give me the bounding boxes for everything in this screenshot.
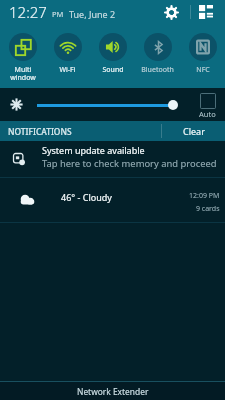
staticText: Tue, June 2 <box>69 8 116 20</box>
staticText: Bluetooth <box>141 65 174 75</box>
staticText: PM <box>52 9 64 19</box>
button[interactable]: Auto brightness <box>200 93 216 109</box>
staticText: 12:27 <box>9 2 47 22</box>
staticText: Sound <box>102 65 124 75</box>
staticText: 9 cards <box>196 204 220 214</box>
staticText: System update available <box>42 144 145 156</box>
button[interactable]: System update available <box>0 141 225 177</box>
staticText: Auto <box>199 109 216 119</box>
button[interactable]: NFC <box>180 27 225 88</box>
button[interactable]: Wi-Fi <box>45 27 90 88</box>
button[interactable]: Settings <box>159 0 183 24</box>
button[interactable]: Quick settings <box>194 0 218 24</box>
staticText: Multi window <box>10 65 36 82</box>
button[interactable]: Sound <box>90 27 135 88</box>
staticText: Network Extender <box>77 386 149 397</box>
staticText: Wi-Fi <box>59 65 76 75</box>
button[interactable]: Clear <box>162 121 225 141</box>
button[interactable]: Bluetooth <box>135 27 180 88</box>
staticText: Tap here to check memory and proceed <box>42 157 217 170</box>
staticText: Clear <box>183 125 205 137</box>
staticText: 46° - Cloudy <box>61 191 112 203</box>
button[interactable]: Multi window <box>0 27 45 88</box>
staticText: NOTIFICATIONS <box>8 126 72 137</box>
staticText: 12:09 PM <box>189 191 220 201</box>
button[interactable]: 46° - Cloudy <box>0 178 225 222</box>
staticText: NFC <box>196 65 210 75</box>
button[interactable]: Network Extender <box>0 382 225 400</box>
